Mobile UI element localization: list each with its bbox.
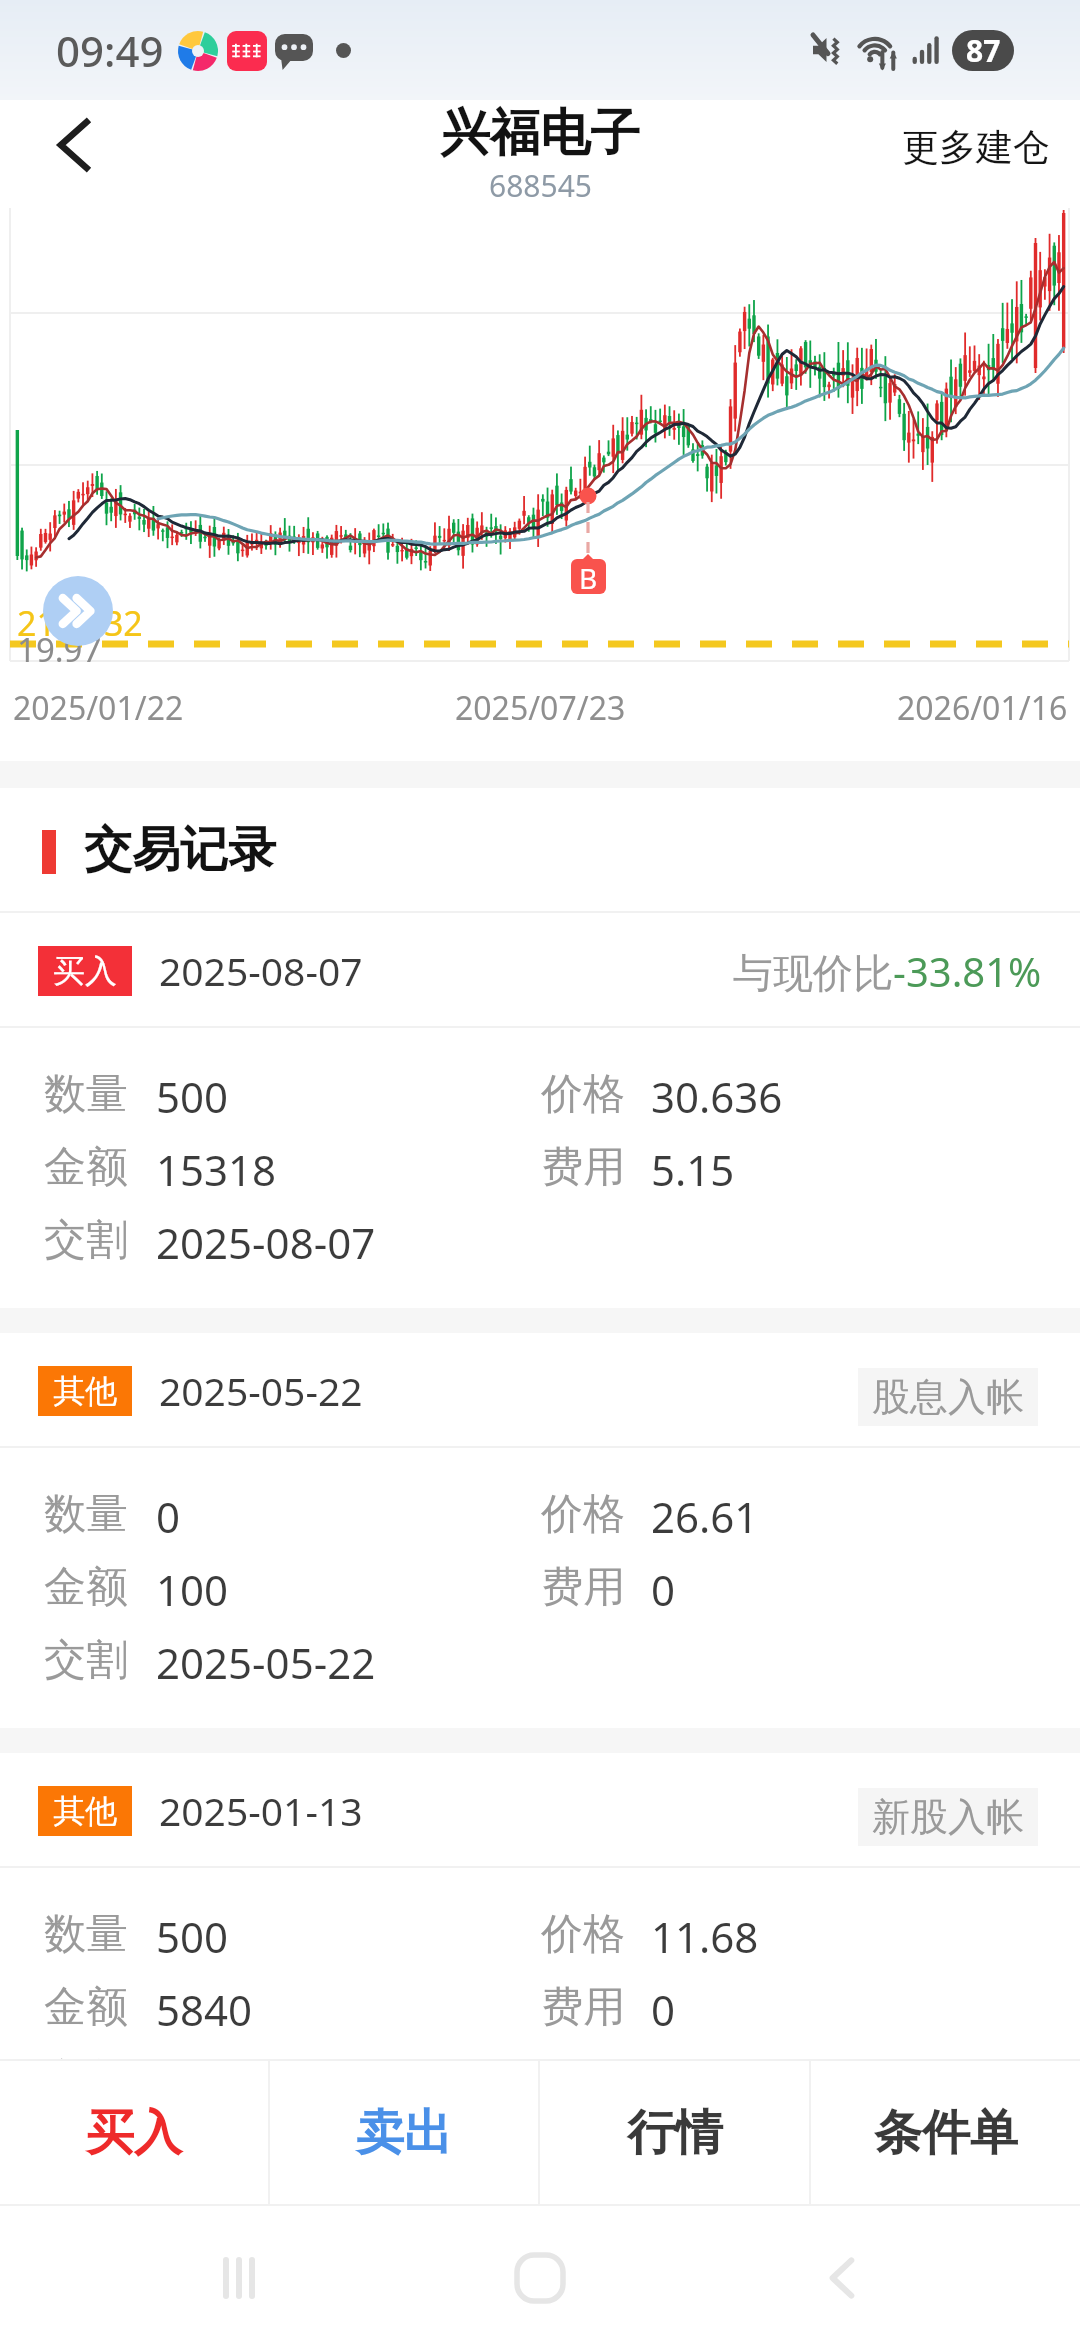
button[interactable]: Back (788, 2223, 898, 2333)
staticText: 688545 (489, 165, 592, 206)
staticText: 交割 (44, 1634, 128, 1687)
button[interactable]: Back (17, 91, 127, 199)
staticText: 买入 (86, 2103, 182, 2163)
staticText: 5840 (156, 1981, 253, 2038)
staticText: 买入 (53, 951, 117, 991)
staticText: 19.97 (17, 627, 102, 672)
staticText: 兴福电子 (440, 102, 640, 165)
staticText: 金额 (44, 1141, 128, 1194)
staticText: 金额 (44, 1561, 128, 1614)
staticText: 2025-08-07 (156, 1214, 376, 1271)
staticText: 价格 (541, 1908, 625, 1961)
staticText: 26.61 (651, 1488, 759, 1545)
button[interactable]: 买入 (0, 913, 1080, 1028)
staticText: 其他 (53, 1791, 117, 1831)
staticText: 2025-05-22 (159, 1364, 363, 1417)
staticText: 21.0032 (17, 600, 143, 646)
button[interactable]: Home (485, 2223, 595, 2333)
staticText: 其他 (53, 1371, 117, 1411)
staticText: 费用 (541, 1561, 625, 1614)
button[interactable]: 其他 (0, 1333, 1080, 1448)
staticText: 与现价比-33.81% (733, 944, 1042, 999)
staticText: 数量 (44, 1068, 128, 1121)
staticText: 价格 (541, 1068, 625, 1121)
staticText: 股息入帐 (872, 1373, 1024, 1421)
staticText: 行情 (627, 2103, 723, 2163)
staticText: 数量 (44, 1488, 128, 1541)
staticText: 0 (651, 1981, 676, 2038)
staticText: 2025/07/23 (455, 686, 626, 730)
staticText: 15318 (156, 1141, 277, 1198)
staticText: 数量 (44, 1908, 128, 1961)
staticText: 2025-01-13 (159, 1784, 363, 1837)
staticText: 500 (156, 1908, 229, 1965)
button[interactable]: Expand chart (43, 576, 113, 646)
staticText: 5.15 (651, 1141, 735, 1198)
staticText: 新股入帐 (872, 1793, 1024, 1841)
staticText: 2025-01-13 (156, 2054, 376, 2111)
staticText: 30.636 (651, 1068, 783, 1125)
staticText: 2025/01/22 (13, 686, 184, 730)
staticText: 条件单 (874, 2103, 1018, 2163)
staticText: 更多建仓 (902, 124, 1050, 171)
staticText: 金额 (44, 1981, 128, 2034)
staticText: 100 (156, 1561, 229, 1618)
button[interactable]: 更多建仓 (882, 106, 1070, 189)
staticText: 2025-08-07 (159, 944, 363, 997)
staticText: 11.68 (651, 1908, 759, 1965)
staticText: 交易记录 (84, 820, 276, 880)
staticText: 500 (156, 1068, 229, 1125)
staticText: 2025-05-22 (156, 1634, 376, 1691)
staticText: 价格 (541, 1488, 625, 1541)
staticText: 87 (966, 30, 1001, 71)
staticText: 0 (651, 1561, 676, 1618)
staticText: 2026/01/16 (897, 686, 1068, 730)
button[interactable]: 卖出 (270, 2061, 538, 2204)
staticText: B (579, 559, 598, 594)
button[interactable]: 其他 (0, 1753, 1080, 1868)
staticText: 交割 (44, 1214, 128, 1267)
button[interactable]: Recent apps (184, 2223, 294, 2333)
staticText: 费用 (541, 1981, 625, 2034)
staticText: 费用 (541, 1141, 625, 1194)
staticText: 卖出 (356, 2103, 452, 2163)
button[interactable]: 买入 (0, 2061, 268, 2204)
staticText: 09:49 (56, 22, 164, 79)
staticText: 0 (156, 1488, 181, 1545)
button[interactable]: 行情 (540, 2061, 809, 2204)
button[interactable]: 条件单 (811, 2061, 1080, 2204)
